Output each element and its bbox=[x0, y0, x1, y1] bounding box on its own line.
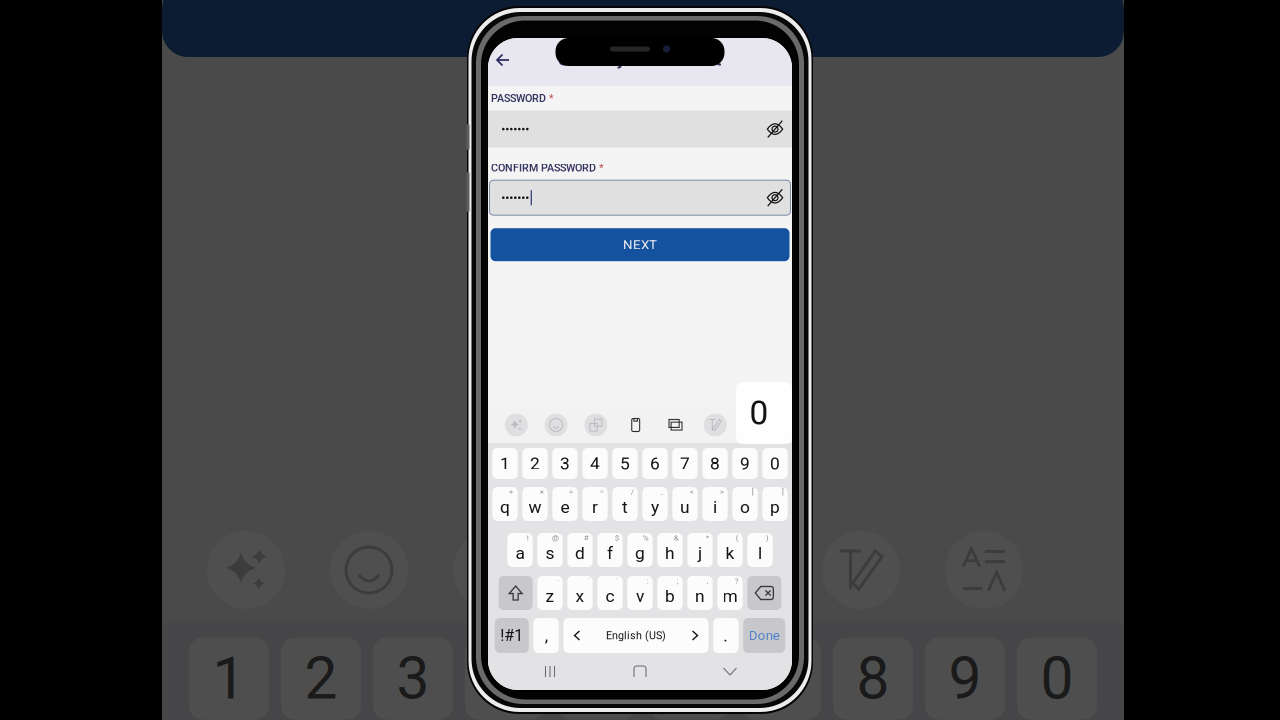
staticText: s bbox=[545, 543, 554, 563]
button[interactable]: ( bbox=[717, 533, 743, 567]
staticText: @ bbox=[552, 533, 559, 542]
button[interactable]: ? bbox=[717, 576, 743, 610]
button[interactable]: + bbox=[492, 487, 518, 521]
staticText: ] bbox=[782, 487, 784, 496]
staticText: i bbox=[713, 497, 717, 517]
button[interactable]: ÷ bbox=[552, 487, 578, 521]
button[interactable]: # bbox=[567, 533, 593, 567]
staticText: 5 bbox=[580, 644, 613, 713]
staticText: = bbox=[600, 487, 604, 496]
button[interactable]: * bbox=[687, 533, 713, 567]
staticText: / bbox=[631, 487, 634, 496]
button[interactable]: 4 bbox=[582, 448, 608, 479]
staticText: 2 bbox=[530, 453, 540, 474]
staticText: # bbox=[584, 533, 589, 542]
button[interactable]: Show password bbox=[758, 180, 792, 215]
staticText: x bbox=[575, 586, 584, 606]
button[interactable]: , bbox=[687, 576, 713, 610]
button[interactable]: 1 bbox=[492, 448, 518, 479]
staticText: < bbox=[690, 487, 694, 496]
staticText: d bbox=[575, 543, 585, 563]
staticText: 8 bbox=[710, 453, 720, 474]
button[interactable]: = bbox=[582, 487, 608, 521]
staticText: % bbox=[643, 533, 649, 542]
staticText: ; bbox=[677, 576, 679, 585]
button[interactable]: Keyboard tool bbox=[584, 413, 607, 436]
button[interactable]: × bbox=[522, 487, 548, 521]
button[interactable]: 3 bbox=[552, 448, 578, 479]
button[interactable]: NEXT bbox=[490, 228, 789, 261]
staticText: h bbox=[665, 543, 675, 563]
button[interactable]: Show password bbox=[758, 111, 792, 148]
button[interactable]: Keyboard tool bbox=[505, 413, 528, 436]
staticText: u bbox=[680, 497, 690, 517]
staticText: 8 bbox=[856, 644, 889, 713]
staticText: f bbox=[607, 543, 613, 563]
staticText: 1 bbox=[212, 644, 245, 713]
staticText: 7 bbox=[680, 453, 690, 474]
staticText: o bbox=[740, 497, 750, 517]
staticText: 4 bbox=[488, 644, 521, 713]
staticText: & bbox=[674, 533, 679, 542]
button[interactable]: , bbox=[533, 618, 559, 653]
button[interactable]: : bbox=[627, 576, 653, 610]
button[interactable]: Home bbox=[612, 653, 668, 690]
button[interactable]: 9 bbox=[732, 448, 758, 479]
button[interactable]: / bbox=[612, 487, 638, 521]
staticText: [ bbox=[752, 487, 754, 496]
staticText: m bbox=[722, 586, 737, 606]
button[interactable]: & bbox=[657, 533, 683, 567]
button[interactable]: Shift bbox=[499, 576, 533, 610]
staticText: Secure your Account bbox=[558, 49, 721, 70]
button[interactable]: ! bbox=[507, 533, 533, 567]
staticText: 7 bbox=[764, 644, 797, 713]
button[interactable]: 2 bbox=[522, 448, 548, 479]
button[interactable]: !#1 bbox=[495, 618, 529, 653]
button[interactable]: Back bbox=[702, 653, 758, 690]
staticText: 3 bbox=[396, 644, 429, 713]
button[interactable]: Keyboard tool bbox=[664, 413, 687, 436]
button[interactable]: $ bbox=[597, 533, 623, 567]
button[interactable]: 8 bbox=[702, 448, 728, 479]
button[interactable]: 0 bbox=[762, 448, 788, 479]
staticText: n bbox=[695, 586, 705, 606]
staticText: a bbox=[515, 543, 524, 563]
button[interactable]: > bbox=[702, 487, 728, 521]
button[interactable]: _ bbox=[642, 487, 668, 521]
staticText: ( bbox=[736, 533, 739, 542]
button[interactable]: . bbox=[713, 618, 738, 653]
staticText: * bbox=[549, 92, 554, 104]
button[interactable]: % bbox=[627, 533, 653, 567]
button[interactable]: 5 bbox=[612, 448, 638, 479]
button[interactable]: Keyboard tool bbox=[704, 413, 727, 436]
button[interactable]: Back bbox=[488, 38, 518, 86]
staticText: c bbox=[605, 586, 614, 606]
button[interactable]: Keyboard tool bbox=[624, 413, 647, 436]
staticText: , bbox=[545, 625, 548, 646]
staticText: _ bbox=[660, 487, 664, 496]
staticText: 4 bbox=[590, 453, 600, 474]
button[interactable]: ' bbox=[567, 576, 593, 610]
button[interactable]: Backspace bbox=[747, 576, 781, 610]
button[interactable]: Recents bbox=[522, 653, 578, 690]
button[interactable]: 6 bbox=[642, 448, 668, 479]
button[interactable]: - bbox=[537, 576, 563, 610]
staticText: 1 bbox=[500, 453, 510, 474]
button[interactable]: < bbox=[672, 487, 698, 521]
button[interactable]: " bbox=[597, 576, 623, 610]
button[interactable]: ] bbox=[762, 487, 788, 521]
button[interactable]: ) bbox=[747, 533, 773, 567]
button[interactable]: English (US) bbox=[563, 618, 708, 653]
staticText: k bbox=[725, 543, 734, 563]
button[interactable]: @ bbox=[537, 533, 563, 567]
staticText: q bbox=[500, 497, 510, 517]
button[interactable]: 7 bbox=[672, 448, 698, 479]
button[interactable]: Done bbox=[743, 618, 785, 653]
staticText: , bbox=[707, 576, 709, 585]
button[interactable]: [ bbox=[732, 487, 758, 521]
staticText: 9 bbox=[948, 644, 981, 713]
staticText: : bbox=[647, 576, 649, 585]
button[interactable]: Keyboard tool bbox=[545, 413, 568, 436]
button[interactable]: Keyboard tool bbox=[744, 413, 767, 436]
button[interactable]: ; bbox=[657, 576, 683, 610]
